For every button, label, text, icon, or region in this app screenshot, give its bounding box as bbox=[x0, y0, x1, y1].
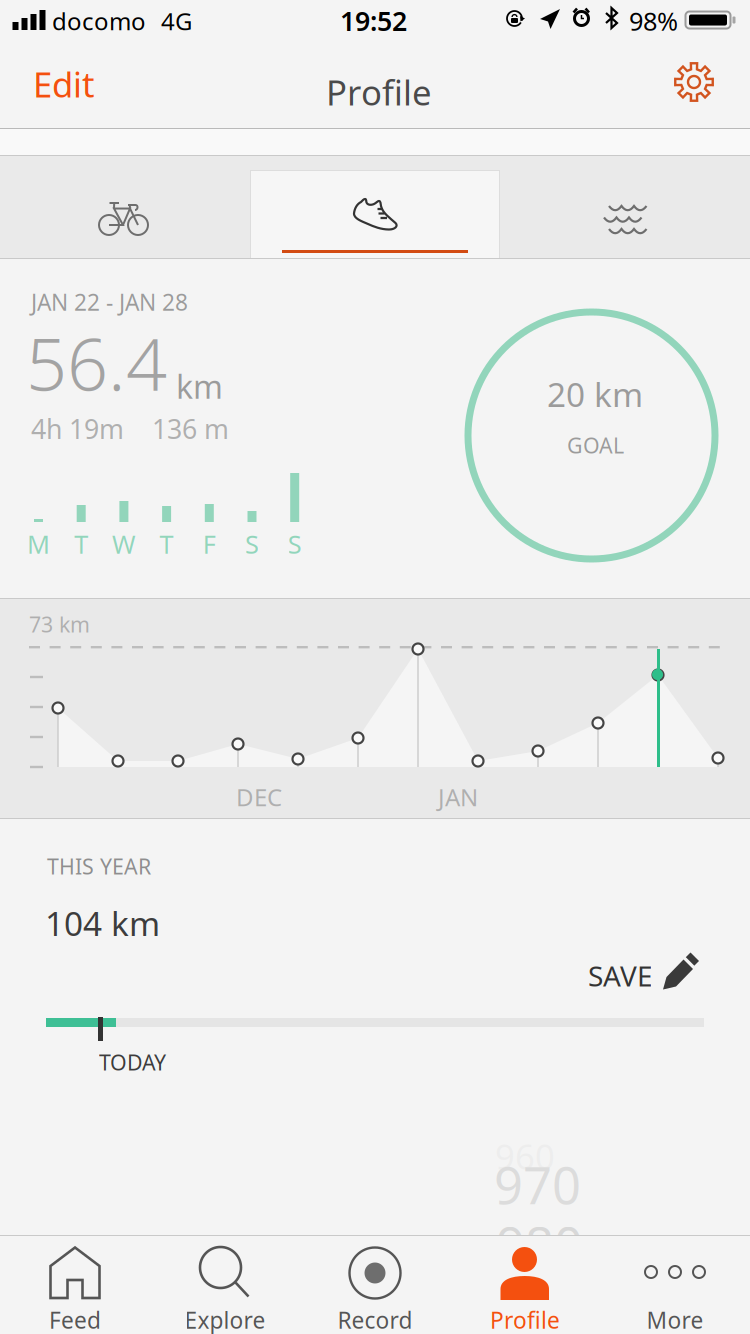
staticText: 19:52 bbox=[340, 3, 407, 38]
staticText: GOAL bbox=[567, 431, 624, 459]
button[interactable]: Feed bbox=[0, 1236, 150, 1334]
button[interactable]: Edit bbox=[33, 52, 123, 116]
staticText: 4G bbox=[161, 5, 192, 37]
staticText: 56.4 bbox=[26, 315, 167, 411]
staticText: TODAY bbox=[99, 1048, 166, 1076]
staticText: S bbox=[288, 527, 302, 561]
button[interactable]: More bbox=[600, 1236, 750, 1334]
staticText: km bbox=[176, 365, 223, 407]
staticText: 970 bbox=[494, 1151, 581, 1218]
button[interactable]: Explore bbox=[150, 1236, 300, 1334]
staticText: Profile bbox=[490, 1305, 560, 1334]
staticText: DEC bbox=[236, 781, 282, 813]
staticText: Profile bbox=[326, 69, 432, 115]
staticText: F bbox=[203, 527, 216, 561]
staticText: 136 m bbox=[152, 411, 229, 446]
staticText: Edit bbox=[33, 61, 95, 107]
staticText: THIS YEAR bbox=[47, 852, 151, 880]
staticText: M bbox=[27, 527, 50, 561]
staticText: 73 km bbox=[29, 610, 90, 638]
button[interactable]: Swim bbox=[500, 156, 750, 258]
staticText: Record bbox=[337, 1305, 412, 1334]
staticText: JAN bbox=[438, 781, 478, 813]
staticText: T bbox=[74, 527, 88, 561]
button[interactable]: Settings bbox=[657, 50, 731, 114]
staticText: 960 bbox=[495, 1133, 555, 1179]
button[interactable]: SAVE bbox=[560, 945, 710, 997]
staticText: Explore bbox=[184, 1305, 265, 1334]
staticText: docomo bbox=[52, 5, 146, 37]
button[interactable]: Run bbox=[250, 156, 500, 258]
staticText: JAN 22 - JAN 28 bbox=[31, 287, 188, 317]
staticText: More bbox=[646, 1305, 703, 1334]
staticText: 104 km bbox=[45, 901, 160, 945]
button[interactable]: Ride bbox=[0, 156, 250, 258]
staticText: 980 bbox=[496, 1211, 583, 1278]
staticText: S bbox=[245, 527, 259, 561]
button[interactable]: Record bbox=[300, 1236, 450, 1334]
staticText: 98% bbox=[629, 4, 678, 38]
staticText: SAVE bbox=[588, 957, 653, 994]
staticText: 4h 19m bbox=[31, 411, 124, 446]
button[interactable]: Profile bbox=[450, 1236, 600, 1334]
staticText: T bbox=[160, 527, 174, 561]
staticText: Feed bbox=[49, 1305, 101, 1334]
staticText: 20 km bbox=[547, 372, 643, 416]
staticText: W bbox=[112, 527, 136, 561]
